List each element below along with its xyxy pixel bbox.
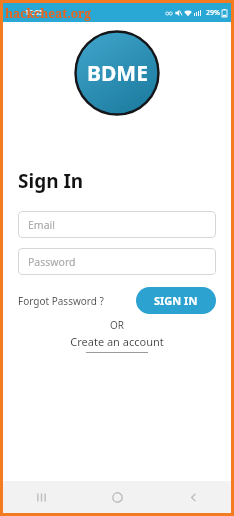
- staticText: BDME: [87, 59, 148, 88]
- staticText: 12:05: [25, 8, 43, 18]
- button[interactable]: Create an account: [70, 334, 164, 353]
- button[interactable]: Password: [18, 248, 216, 275]
- staticText: hackcheat.org: [5, 5, 92, 21]
- staticText: SIGN IN: [154, 293, 198, 308]
- button[interactable]: Back: [155, 481, 231, 513]
- button[interactable]: Email: [18, 211, 216, 238]
- staticText: OR: [110, 318, 125, 332]
- button[interactable]: Recent apps: [3, 481, 79, 513]
- staticText: Sign In: [18, 168, 84, 194]
- staticText: Password: [28, 255, 76, 269]
- button[interactable]: Forgot Password ?: [18, 290, 104, 312]
- staticText: Forgot Password ?: [18, 294, 104, 308]
- button[interactable]: Home: [79, 481, 155, 513]
- button[interactable]: SIGN IN: [136, 287, 216, 314]
- staticText: Create an account: [70, 334, 164, 349]
- staticText: Email: [28, 218, 55, 232]
- staticText: 29%: [206, 8, 220, 18]
